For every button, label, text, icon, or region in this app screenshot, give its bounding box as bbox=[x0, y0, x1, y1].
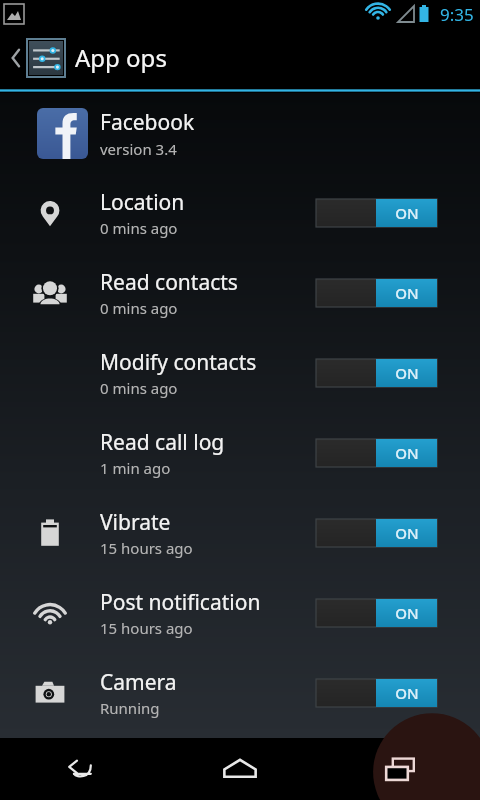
staticText: Modify contacts bbox=[100, 348, 257, 377]
staticText: 9:35 bbox=[440, 3, 474, 26]
staticText: 15 hours ago bbox=[100, 618, 193, 638]
button[interactable]: Modify contacts bbox=[0, 333, 480, 413]
button[interactable]: Read call log toggle, on bbox=[316, 439, 437, 467]
button[interactable]: Back bbox=[0, 738, 160, 800]
staticText: 15 hours ago bbox=[100, 538, 193, 558]
button[interactable]: Read contacts bbox=[0, 253, 480, 333]
staticText: App ops bbox=[75, 41, 167, 74]
staticText: Read contacts bbox=[100, 268, 238, 297]
staticText: ON bbox=[395, 283, 419, 303]
staticText: Location bbox=[100, 188, 185, 217]
button[interactable]: Post notification toggle, on bbox=[316, 599, 437, 627]
button[interactable]: Facebook bbox=[0, 93, 480, 173]
button[interactable]: Camera bbox=[0, 653, 480, 733]
staticText: Vibrate bbox=[100, 508, 171, 537]
staticText: ON bbox=[395, 203, 419, 223]
staticText: 0 mins ago bbox=[100, 378, 178, 398]
button[interactable]: Recent apps bbox=[320, 738, 480, 800]
button[interactable]: Vibrate toggle, on bbox=[316, 519, 437, 547]
button[interactable]: Location bbox=[0, 173, 480, 253]
staticText: version 3.4 bbox=[100, 139, 177, 159]
staticText: Running bbox=[100, 698, 160, 718]
staticText: ON bbox=[395, 363, 419, 383]
button[interactable]: Home bbox=[160, 738, 320, 800]
button[interactable]: Read call log bbox=[0, 413, 480, 493]
staticText: Post notification bbox=[100, 588, 261, 617]
staticText: Camera bbox=[100, 668, 177, 697]
staticText: ON bbox=[395, 603, 419, 623]
staticText: ON bbox=[395, 523, 419, 543]
button[interactable]: Camera toggle, on bbox=[316, 679, 437, 707]
staticText: Read call log bbox=[100, 428, 225, 457]
staticText: 0 mins ago bbox=[100, 218, 178, 238]
button[interactable]: Vibrate bbox=[0, 493, 480, 573]
button[interactable]: Read contacts toggle, on bbox=[316, 279, 437, 307]
button[interactable]: Post notification bbox=[0, 573, 480, 653]
staticText: 0 mins ago bbox=[100, 298, 178, 318]
staticText: Facebook bbox=[100, 108, 195, 137]
button[interactable]: Modify contacts toggle, on bbox=[316, 359, 437, 387]
staticText: 1 min ago bbox=[100, 458, 171, 478]
button[interactable]: Location toggle, on bbox=[316, 199, 437, 227]
staticText: ON bbox=[395, 683, 419, 703]
staticText: ON bbox=[395, 443, 419, 463]
button[interactable]: Navigate up, App ops bbox=[0, 28, 173, 87]
